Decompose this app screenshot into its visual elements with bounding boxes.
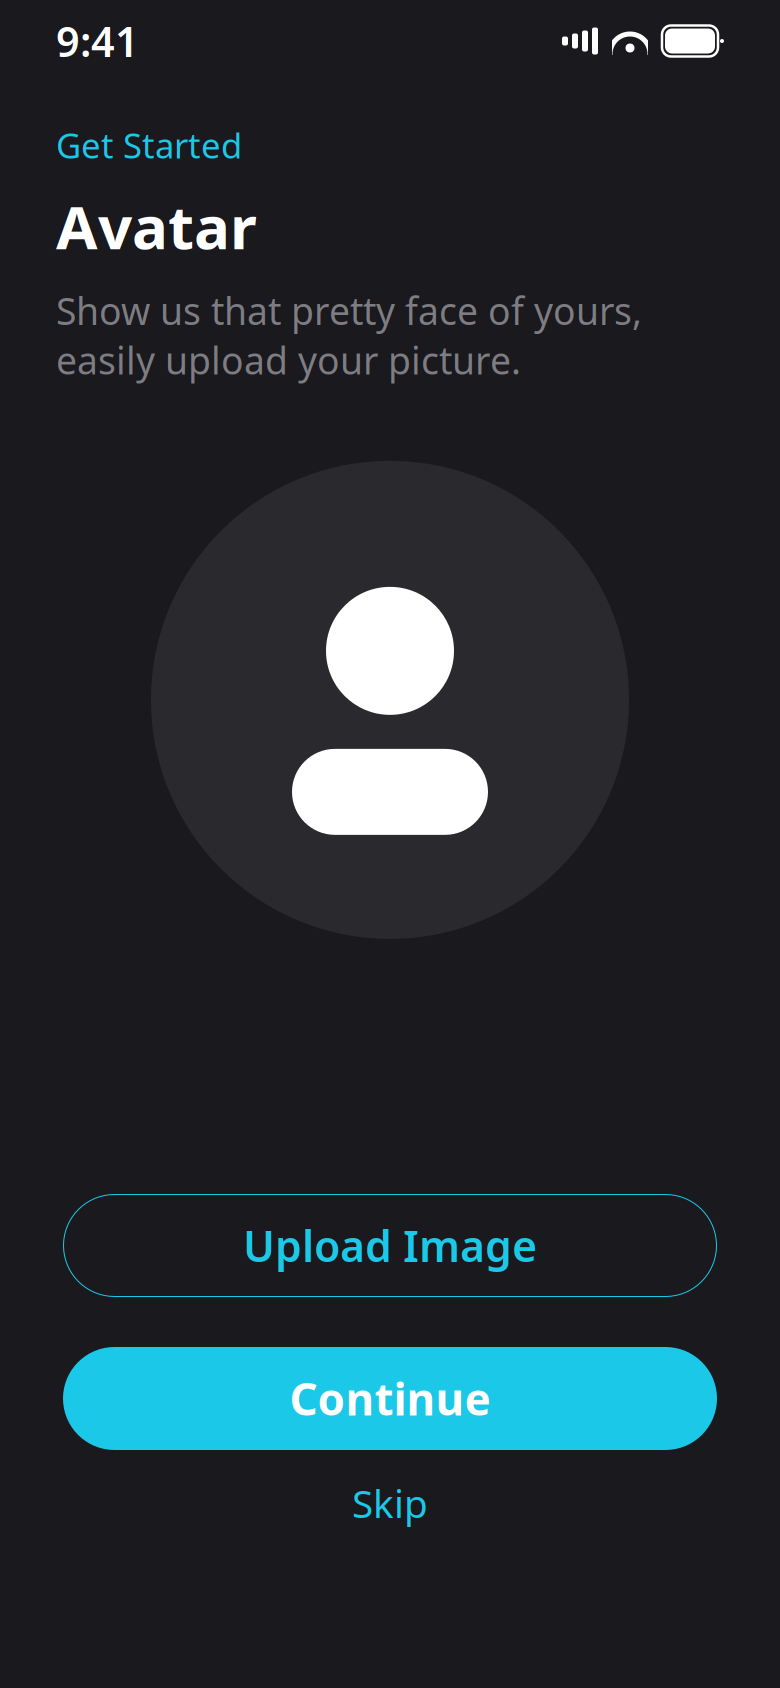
staticText: Upload Image [243,1217,537,1274]
staticText: Continue [289,1369,490,1428]
staticText: Get Started [56,122,242,168]
staticText: Skip [352,1477,428,1529]
staticText: Avatar [56,186,257,266]
staticText: 9:41 [56,14,139,68]
button[interactable]: Skip [63,1468,717,1538]
staticText: Show us that pretty face of yours, easil… [56,286,642,385]
button[interactable]: Upload Image [63,1194,717,1297]
button[interactable]: Continue [63,1347,717,1450]
